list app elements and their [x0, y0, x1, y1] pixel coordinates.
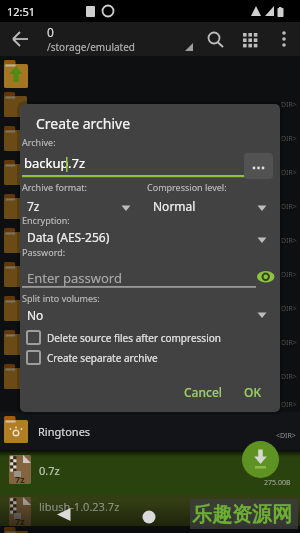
staticText: Archive:: [22, 136, 56, 148]
staticText: DIR>: [281, 338, 297, 348]
staticText: backup: [24, 154, 69, 172]
button[interactable]: [0, 450, 300, 495]
staticText: DIR>: [281, 202, 297, 212]
staticText: 7z: [15, 515, 25, 527]
staticText: DIR>: [281, 236, 297, 246]
staticText: Archive format:: [22, 181, 87, 193]
staticText: libush-1.0.23.7z: [39, 499, 120, 514]
staticText: Create archive: [36, 114, 131, 133]
button[interactable]: Normal: [0, 0, 43, 16]
button[interactable]: OK: [0, 0, 17, 16]
staticText: DIR>: [281, 372, 297, 382]
staticText: DIR>: [281, 400, 297, 410]
staticText: Compression level:: [147, 181, 227, 193]
button[interactable]: Cancel: [0, 0, 39, 16]
button[interactable]: [242, 441, 279, 478]
staticText: Ringtones: [38, 424, 91, 439]
staticText: Split into volumes:: [22, 292, 100, 304]
staticText: DIR>: [281, 134, 297, 144]
staticText: 7z: [15, 473, 25, 485]
staticText: <DIR>: [276, 431, 296, 441]
staticText: DIR>: [281, 168, 297, 178]
staticText: 0: [47, 24, 54, 40]
staticText: /storage/emulated: [47, 40, 135, 54]
staticText: Encryption:: [22, 214, 70, 226]
button[interactable]: Create separate archive: [0, 0, 111, 14]
button[interactable]: No: [0, 0, 17, 16]
staticText: 乐趣资源网: [192, 502, 292, 527]
button[interactable]: Delete source files after compression: [0, 0, 174, 14]
button[interactable]: [0, 412, 300, 450]
staticText: 0.7z: [39, 463, 60, 478]
button[interactable]: Data (AES-256): [0, 0, 83, 16]
staticText: 275.00B: [264, 478, 291, 488]
staticText: .7z: [68, 154, 86, 172]
staticText: DIR>: [281, 304, 297, 314]
staticText: 12:51: [7, 4, 36, 19]
button[interactable]: [0, 495, 300, 526]
button[interactable]: 7z: [0, 0, 13, 16]
staticText: Password:: [22, 246, 66, 258]
staticText: Enter password: [27, 269, 122, 287]
staticText: DIR>: [281, 100, 297, 110]
staticText: DIR>: [281, 270, 297, 280]
